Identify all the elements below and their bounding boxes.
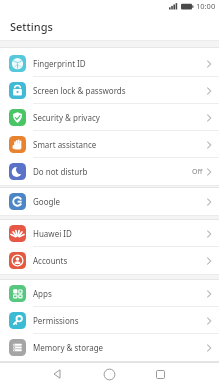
staticText: Security & privacy: [33, 112, 207, 123]
button[interactable]: [150, 364, 170, 384]
button[interactable]: Accounts: [0, 247, 219, 274]
staticText: Permissions: [33, 315, 207, 326]
staticText: Huawei ID: [33, 228, 207, 239]
button[interactable]: Apps: [0, 280, 219, 307]
staticText: Memory & storage: [33, 342, 207, 353]
button[interactable]: Google: [0, 188, 219, 215]
button[interactable]: [47, 364, 67, 384]
button[interactable]: Fingerprint ID: [0, 50, 219, 77]
staticText: Google: [33, 196, 207, 207]
button[interactable]: Huawei ID: [0, 220, 219, 247]
staticText: Settings: [10, 19, 53, 34]
staticText: Fingerprint ID: [33, 58, 207, 69]
staticText: Screen lock & passwords: [33, 85, 207, 96]
button[interactable]: Security & privacy: [0, 104, 219, 131]
button[interactable]: Memory & storage: [0, 334, 219, 361]
staticText: Accounts: [33, 255, 207, 266]
staticText: Smart assistance: [33, 139, 207, 150]
button[interactable]: Smart assistance: [0, 131, 219, 158]
button[interactable]: Do not disturb: [0, 158, 219, 185]
staticText: Off: [192, 167, 203, 177]
button[interactable]: Screen lock & passwords: [0, 77, 219, 104]
button[interactable]: [99, 364, 119, 384]
staticText: Apps: [33, 288, 207, 299]
button[interactable]: Permissions: [0, 307, 219, 334]
staticText: Do not disturb: [33, 166, 192, 177]
staticText: 10:00: [196, 1, 216, 11]
